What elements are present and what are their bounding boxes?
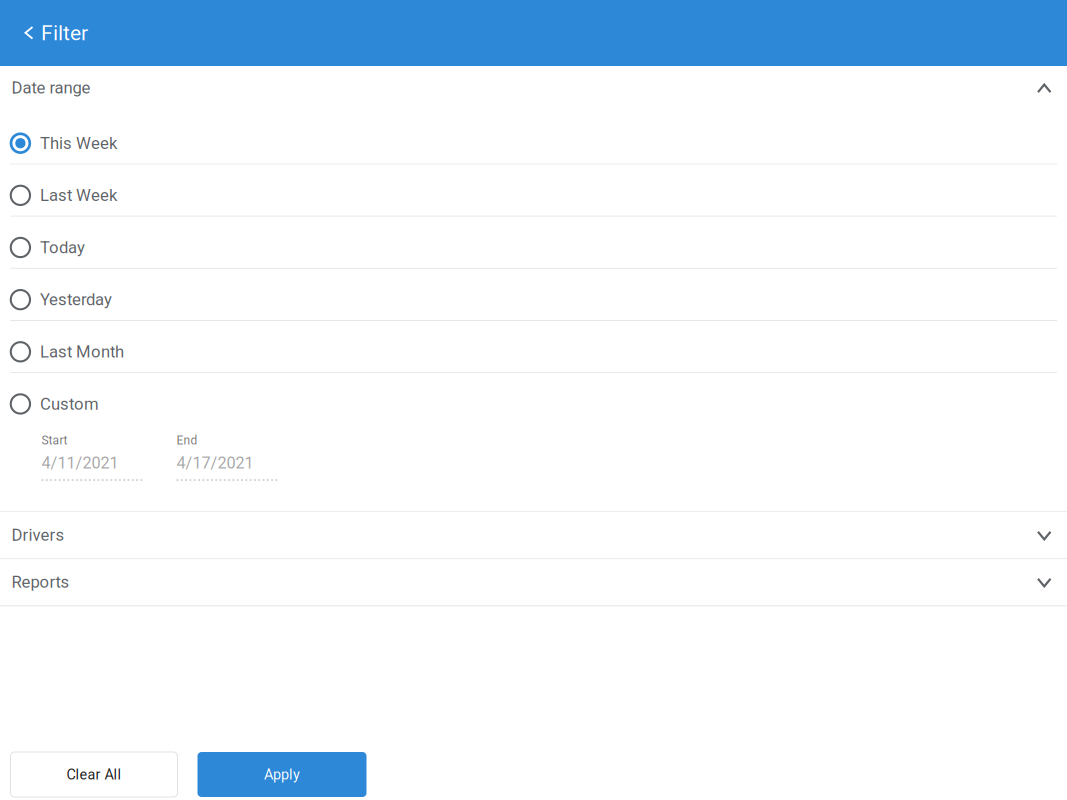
staticText: Last Week [40, 186, 117, 205]
button[interactable]: Last Week [0, 165, 1067, 216]
staticText: Apply [264, 766, 300, 783]
button[interactable]: Apply [197, 752, 366, 797]
staticText: 4/11/2021 [41, 453, 118, 472]
button[interactable]: Custom [0, 373, 1067, 424]
staticText: This Week [40, 133, 117, 153]
staticText: Today [40, 238, 85, 257]
staticText: Drivers [11, 525, 64, 545]
staticText: Filter [41, 21, 88, 45]
button[interactable]: Date range [0, 66, 1067, 112]
staticText: Start [41, 433, 67, 447]
staticText: Clear All [66, 766, 121, 783]
button[interactable]: Last Month [0, 321, 1067, 372]
button[interactable]: End [176, 433, 280, 481]
button[interactable]: Today [0, 217, 1067, 268]
button[interactable]: Back to Filter [0, 0, 102, 66]
button[interactable]: This Week [0, 112, 1067, 163]
button[interactable]: Clear All [10, 752, 177, 797]
button[interactable]: Drivers [0, 512, 1067, 558]
staticText: Custom [40, 394, 99, 414]
button[interactable]: Reports [0, 559, 1067, 605]
staticText: Date range [11, 78, 90, 98]
staticText: Last Month [40, 342, 124, 361]
staticText: End [176, 433, 197, 447]
staticText: Yesterday [40, 290, 112, 309]
staticText: 4/17/2021 [176, 453, 253, 472]
button[interactable]: Start [41, 433, 145, 481]
staticText: Reports [11, 572, 69, 592]
button[interactable]: Yesterday [0, 269, 1067, 320]
